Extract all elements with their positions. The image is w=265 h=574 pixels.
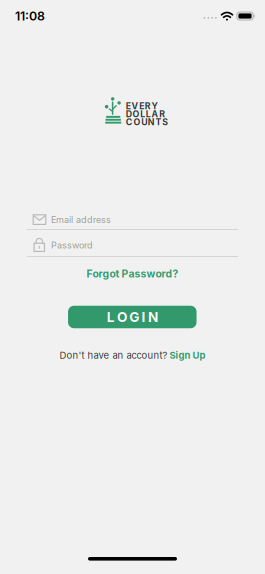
staticText: C <box>126 117 133 127</box>
staticText: O <box>117 309 127 325</box>
staticText: O <box>132 109 139 119</box>
staticText: Don't have an account? <box>59 350 167 361</box>
staticText: R <box>159 109 165 119</box>
staticText: 11:08 <box>15 9 45 23</box>
staticText: Y <box>152 101 158 111</box>
staticText: L <box>140 109 145 119</box>
staticText: Email address <box>51 214 111 225</box>
staticText: N <box>148 309 158 325</box>
staticText: D <box>126 109 132 119</box>
staticText: U <box>141 117 147 127</box>
staticText: I <box>142 309 146 325</box>
textField[interactable]: Email address <box>51 214 238 225</box>
staticText: E <box>126 101 131 111</box>
staticText: V <box>131 101 138 111</box>
staticText: Forgot Password? <box>86 267 178 280</box>
staticText: T <box>156 117 162 127</box>
staticText: O <box>133 117 140 127</box>
button[interactable]: Forgot Password? <box>86 267 178 280</box>
staticText: R <box>145 101 151 111</box>
staticText: L <box>107 309 115 325</box>
staticText: E <box>139 101 144 111</box>
staticText: L <box>146 109 151 119</box>
button[interactable]: LOGIN <box>68 306 197 328</box>
staticText: A <box>152 109 159 119</box>
staticText: Password <box>51 240 93 251</box>
textField[interactable]: Password <box>51 240 238 251</box>
staticText: G <box>129 309 139 325</box>
staticText: Sign Up <box>169 350 205 361</box>
staticText: N <box>148 117 155 127</box>
staticText: S <box>162 117 168 127</box>
button[interactable]: Sign Up <box>169 350 205 361</box>
